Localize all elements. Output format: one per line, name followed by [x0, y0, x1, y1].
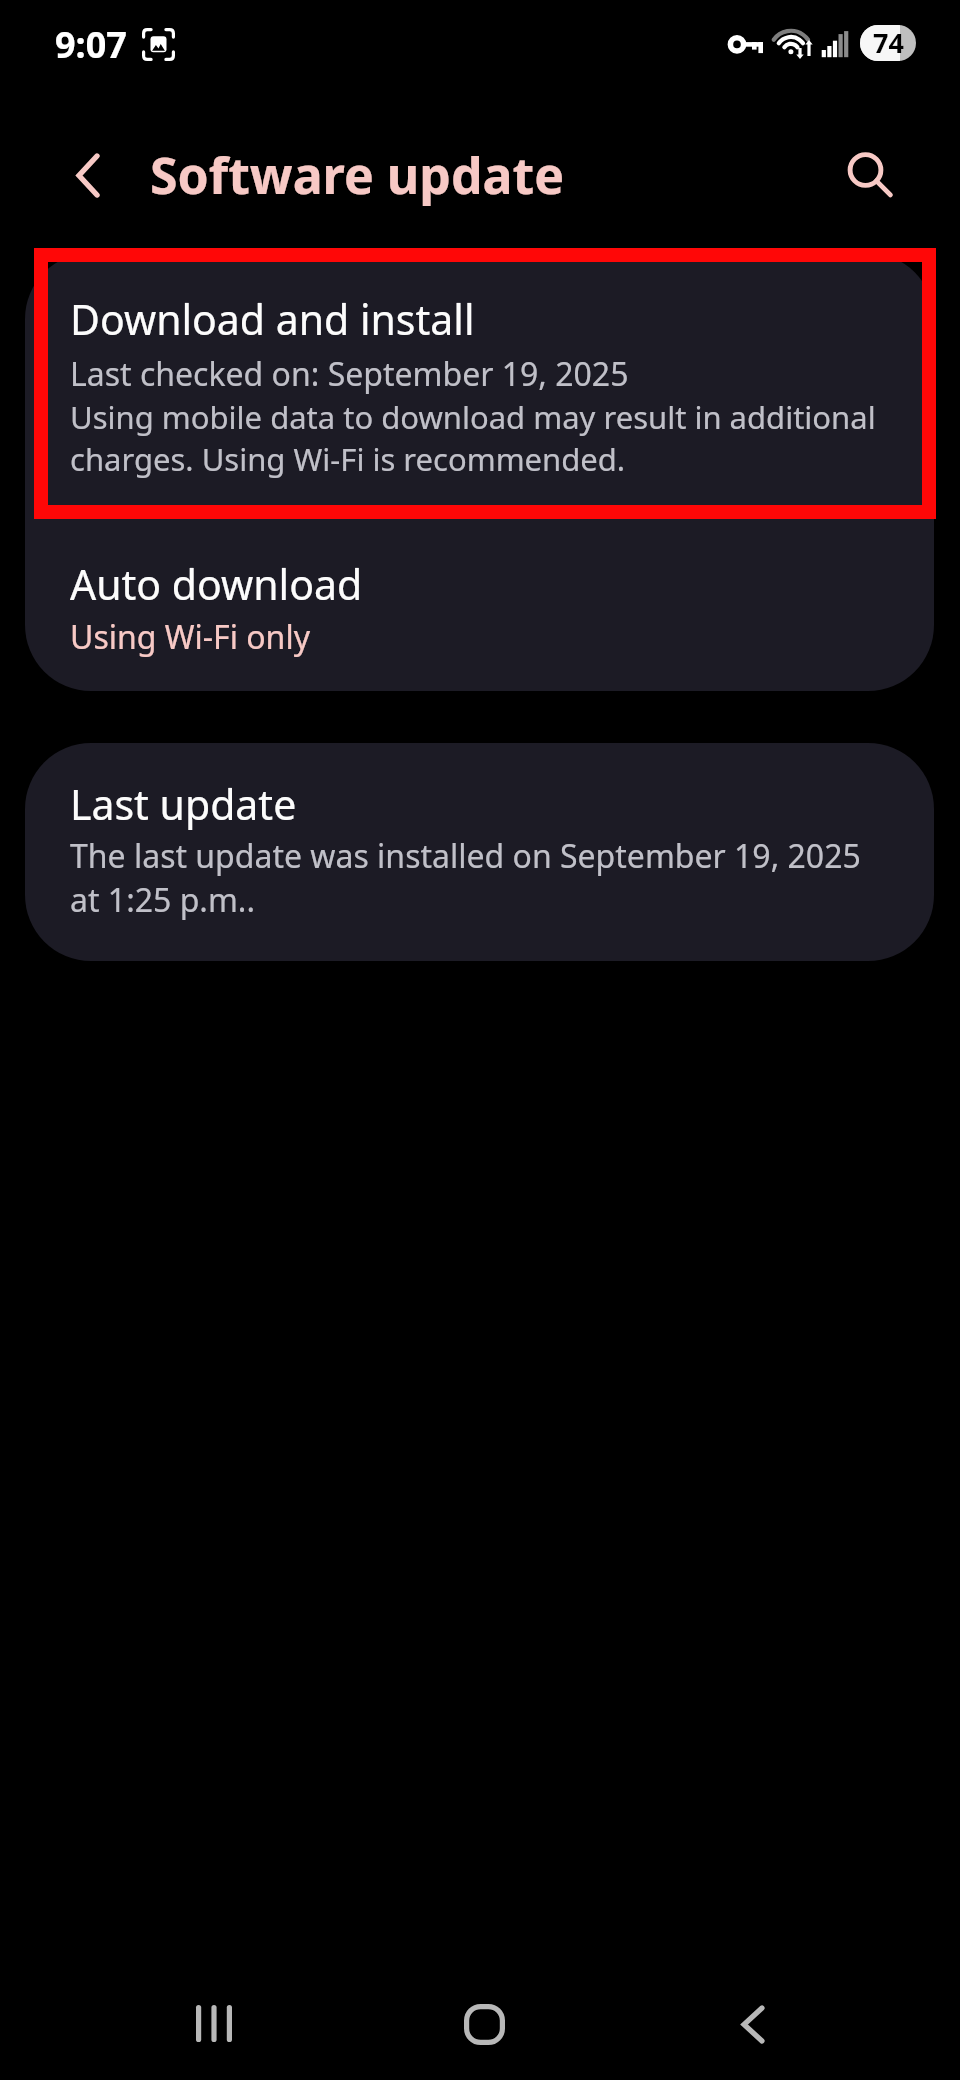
staticText: Download and install — [70, 291, 475, 347]
button[interactable]: Recent apps — [161, 1970, 267, 2076]
button[interactable]: Download and install — [25, 253, 934, 480]
staticText: Auto download — [70, 556, 363, 612]
staticText: Last update — [70, 776, 297, 832]
staticText: Using mobile data to download may result… — [70, 396, 883, 480]
staticText: The last update was installed on Septemb… — [70, 834, 881, 922]
button[interactable]: Home — [431, 1971, 537, 2077]
staticText: 74 — [873, 25, 904, 60]
staticText: 9:07 — [55, 20, 127, 69]
staticText: Software update — [150, 141, 564, 209]
staticText: Last checked on: September 19, 2025 — [70, 352, 629, 396]
button[interactable]: Search — [820, 125, 912, 217]
button[interactable]: Last update — [25, 743, 934, 961]
button[interactable]: Back — [700, 1971, 806, 2077]
button[interactable]: Auto download — [25, 480, 934, 691]
button[interactable]: Navigate up — [42, 129, 134, 221]
staticText: Using Wi-Fi only — [70, 615, 310, 659]
